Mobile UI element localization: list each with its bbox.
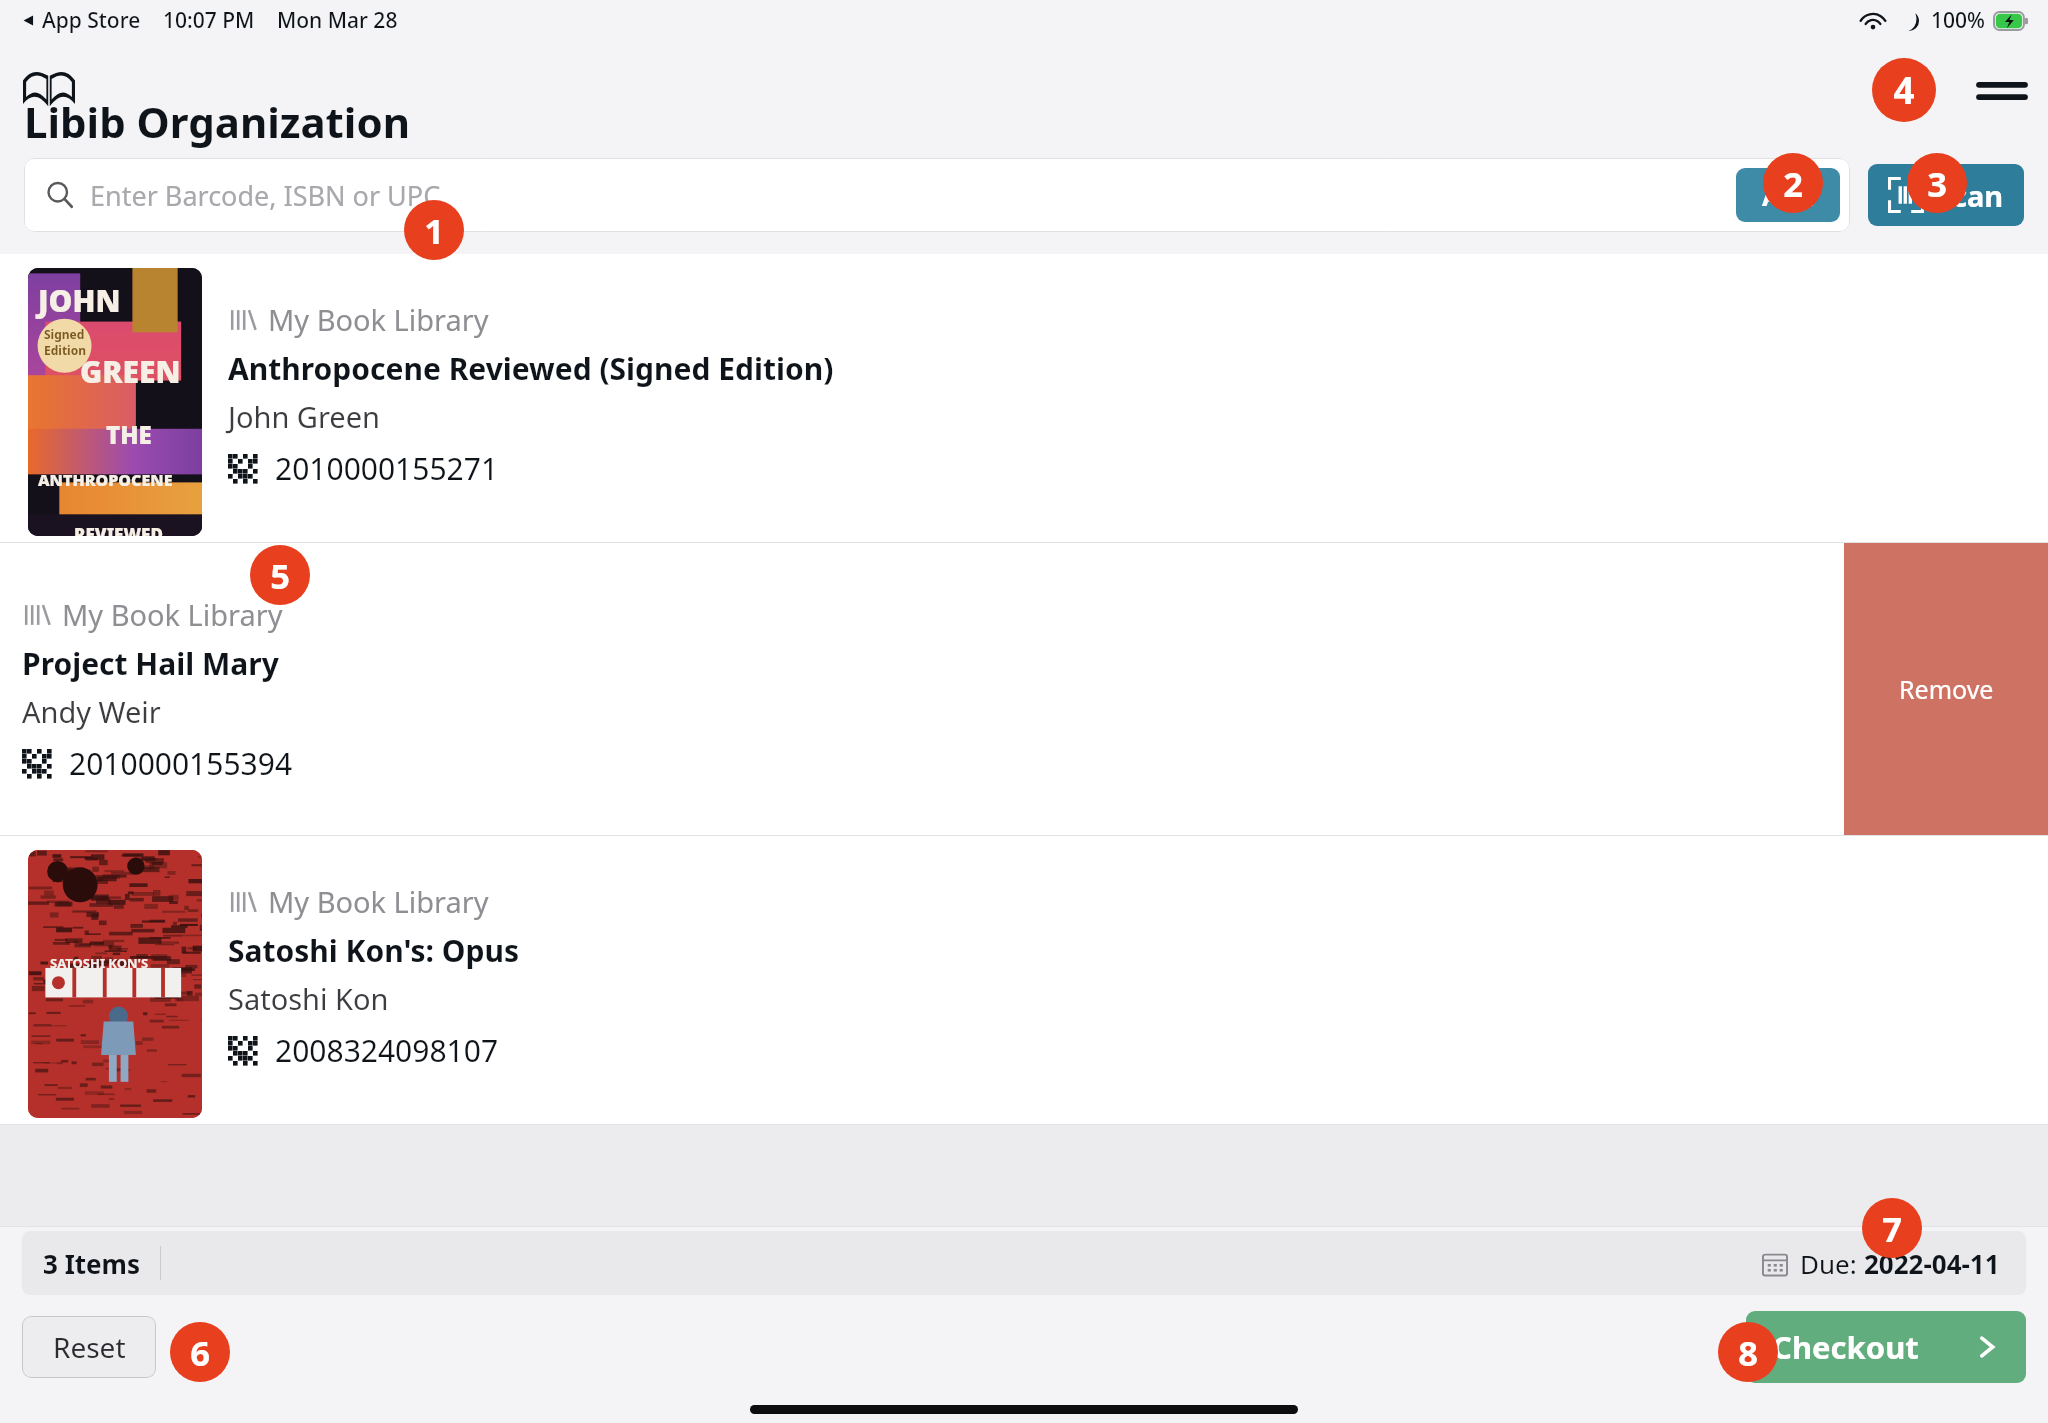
staticText: Libib Organization bbox=[24, 93, 410, 150]
staticText: Remove bbox=[1899, 672, 1994, 706]
staticText: Andy Weir bbox=[22, 692, 161, 731]
staticText: Mon Mar 28 bbox=[277, 6, 398, 35]
staticText: 8 bbox=[1738, 1329, 1758, 1376]
staticText: ANTHROPOCENE bbox=[38, 469, 173, 491]
button[interactable]: JOHN bbox=[0, 254, 2048, 542]
button[interactable]: Libib home bbox=[14, 60, 84, 116]
staticText: 10:07 PM bbox=[163, 6, 255, 35]
staticText: Scan bbox=[1936, 176, 2004, 215]
staticText: 4 bbox=[1893, 65, 1915, 115]
staticText: 2010000155271 bbox=[275, 448, 499, 489]
button[interactable]: Scan bbox=[1868, 164, 2024, 226]
staticText: 2010000155394 bbox=[69, 743, 293, 784]
staticText: SATOSHI KON'S bbox=[50, 954, 202, 972]
staticText: Satoshi Kon bbox=[228, 979, 389, 1018]
staticText: GREEN bbox=[80, 351, 181, 392]
staticText: 1 bbox=[424, 207, 444, 254]
staticText: Signed bbox=[44, 326, 85, 342]
staticText: Anthropocene Reviewed (Signed Edition) bbox=[228, 348, 834, 389]
button[interactable]: My Book Library bbox=[0, 543, 1844, 835]
staticText: My Book Library bbox=[268, 300, 489, 339]
staticText: JOHN bbox=[38, 280, 121, 321]
staticText: John Green bbox=[228, 397, 380, 436]
staticText: 3 Items bbox=[43, 1246, 140, 1281]
staticText: App Store bbox=[42, 6, 141, 35]
staticText: 7 bbox=[1882, 1205, 1902, 1252]
staticText: 2022-04-11 bbox=[1864, 1246, 2000, 1281]
staticText: Checkout bbox=[1772, 1326, 1919, 1368]
staticText: 2008324098107 bbox=[275, 1030, 499, 1071]
button[interactable]: Due: bbox=[1762, 1246, 2000, 1281]
staticText: REVIEWED bbox=[74, 523, 163, 536]
button[interactable]: Add bbox=[1736, 168, 1840, 222]
staticText: 6 bbox=[190, 1329, 210, 1376]
staticText: 100% bbox=[1931, 6, 1985, 35]
button[interactable]: SATOSHI KON'S bbox=[0, 836, 2048, 1124]
button[interactable]: Checkout bbox=[1746, 1311, 2026, 1383]
staticText: Reset bbox=[53, 1328, 126, 1366]
button[interactable]: Reset bbox=[22, 1316, 156, 1378]
staticText: My Book Library bbox=[268, 882, 489, 921]
button[interactable]: Enter Barcode, ISBN or UPC bbox=[24, 158, 1850, 232]
staticText: Edition bbox=[44, 342, 86, 358]
staticText: 3 bbox=[1927, 160, 1947, 207]
button[interactable]: Menu bbox=[1964, 62, 2040, 124]
staticText: Project Hail Mary bbox=[22, 643, 279, 684]
staticText: Add bbox=[1762, 177, 1815, 214]
staticText: THE bbox=[106, 418, 152, 451]
button[interactable]: Remove bbox=[1844, 543, 2048, 835]
staticText: Due: bbox=[1800, 1246, 1864, 1281]
staticText: Enter Barcode, ISBN or UPC bbox=[90, 177, 441, 214]
staticText: 2 bbox=[1783, 160, 1803, 207]
staticText: 5 bbox=[270, 552, 290, 599]
staticText: My Book Library bbox=[62, 595, 283, 634]
staticText: Satoshi Kon's: Opus bbox=[228, 930, 520, 971]
